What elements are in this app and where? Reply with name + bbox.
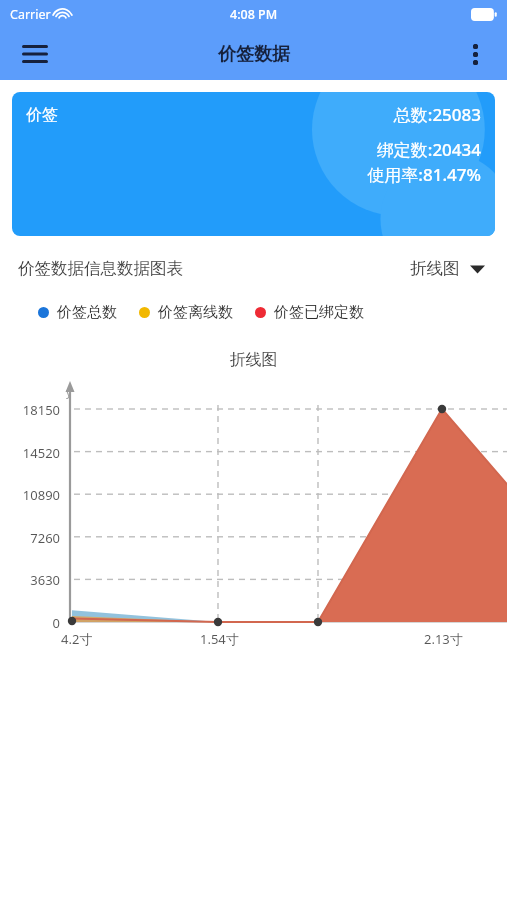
staticText: 18150	[22, 401, 60, 419]
staticText: 价签已绑定数	[274, 303, 364, 322]
staticText: 价签数据信息数据图表	[18, 258, 183, 279]
staticText: 价签离线数	[158, 303, 233, 322]
button[interactable]: 价签已绑定数	[255, 303, 364, 322]
staticText: 14520	[22, 444, 60, 462]
button[interactable]: 折线图	[406, 254, 489, 283]
staticText: y	[66, 384, 72, 399]
staticText: 折线图	[0, 350, 507, 370]
staticText: 价签数据	[218, 43, 290, 66]
staticText: Carrier	[10, 6, 51, 23]
button[interactable]: 价签离线数	[139, 303, 233, 322]
staticText: 10890	[22, 486, 60, 504]
staticText: 4:08 PM	[230, 6, 278, 23]
staticText: 1.54寸	[200, 630, 239, 648]
button[interactable]: 价签总数	[38, 303, 117, 322]
staticText: 3630	[30, 571, 60, 589]
staticText: 0	[52, 614, 60, 632]
staticText: 价签总数	[57, 303, 117, 322]
staticText: 4.2寸	[61, 630, 93, 648]
staticText: 使用率:81.47%	[367, 163, 481, 186]
staticText: 2.13寸	[424, 630, 463, 648]
button[interactable]: Menu	[12, 31, 58, 77]
button[interactable]: More options	[453, 32, 497, 76]
staticText: 价签	[26, 105, 58, 125]
button[interactable]: 价签	[12, 92, 495, 236]
staticText: 总数:25083	[393, 103, 481, 126]
staticText: 7260	[30, 529, 60, 547]
staticText: 折线图	[410, 258, 460, 279]
staticText: 绑定数:20434	[376, 138, 481, 161]
